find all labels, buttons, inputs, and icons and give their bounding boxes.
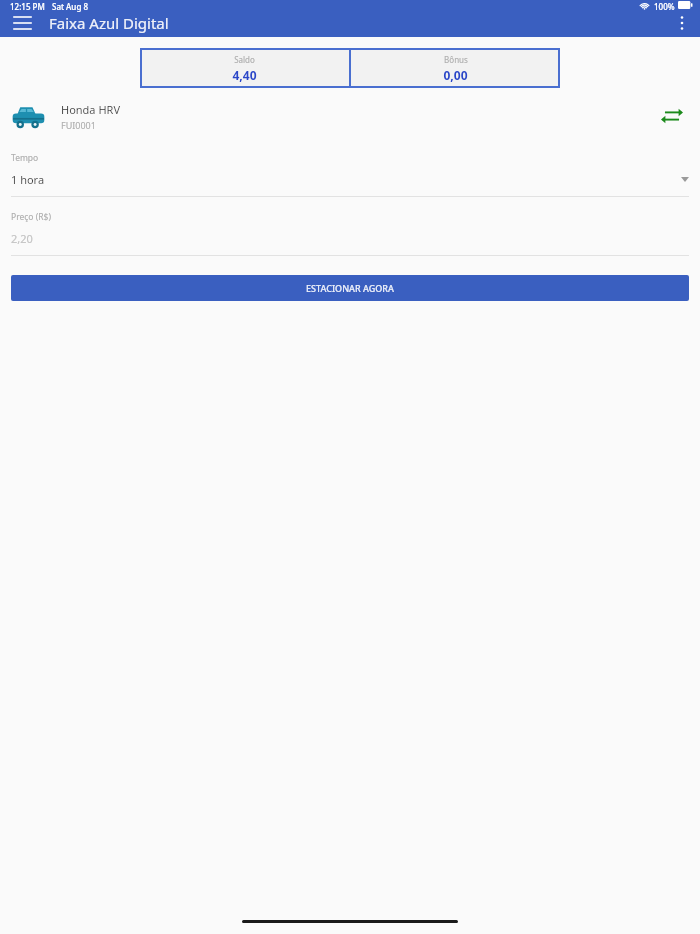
staticText: 2,20 xyxy=(11,231,33,246)
button[interactable]: ESTACIONAR AGORA xyxy=(11,275,689,301)
button[interactable]: Honda HRV xyxy=(0,96,650,136)
button[interactable]: Open navigation menu xyxy=(0,8,44,37)
staticText: 0,00 xyxy=(443,67,468,83)
staticText: Tempo xyxy=(11,152,39,164)
button[interactable]: More options xyxy=(664,8,700,37)
staticText: Preço (R$) xyxy=(11,211,51,223)
staticText: 4,40 xyxy=(232,67,257,83)
button[interactable]: Change vehicle xyxy=(650,96,694,136)
staticText: ESTACIONAR AGORA xyxy=(306,282,394,294)
staticText: Honda HRV xyxy=(61,102,120,117)
staticText: 1 hora xyxy=(11,172,45,187)
staticText: Faixa Azul Digital xyxy=(49,13,169,33)
button[interactable]: Preço (R$) xyxy=(0,211,700,256)
button[interactable]: Saldo xyxy=(140,48,349,88)
staticText: FUI0001 xyxy=(61,119,96,131)
button[interactable]: Bônus xyxy=(351,48,560,88)
staticText: 12:15 PM xyxy=(10,1,45,12)
staticText: Bônus xyxy=(444,54,468,65)
staticText: 100% xyxy=(654,1,675,12)
button[interactable]: Tempo xyxy=(0,152,700,197)
staticText: Sat Aug 8 xyxy=(52,1,88,12)
staticText: Saldo xyxy=(234,54,255,65)
